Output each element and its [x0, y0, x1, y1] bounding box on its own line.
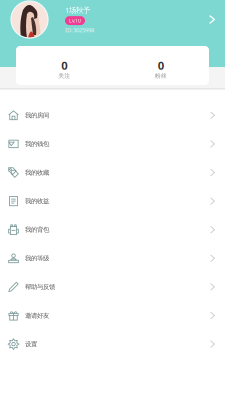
staticText: 0	[158, 58, 164, 73]
staticText: 我的收益	[25, 197, 49, 205]
staticText: 我的收藏	[25, 168, 49, 177]
staticText: ID:3025998	[65, 26, 94, 34]
button[interactable]: 我的收藏	[0, 158, 225, 187]
staticText: 0	[61, 58, 67, 73]
button[interactable]: 我的钱包	[0, 130, 225, 158]
button[interactable]: 0	[112, 46, 209, 85]
staticText: Lv.10	[69, 17, 81, 24]
staticText: 我的房间	[25, 111, 49, 119]
button[interactable]: 我的房间	[0, 101, 225, 130]
button[interactable]: 我的背包	[0, 215, 225, 244]
button[interactable]: 我的等级	[0, 244, 225, 273]
staticText: 邀请好友	[25, 311, 49, 320]
button[interactable]: 0	[16, 46, 112, 85]
staticText: 关注	[58, 72, 70, 79]
staticText: 我的等级	[25, 254, 49, 262]
staticText: 帮助与反馈	[25, 283, 55, 291]
staticText: 我的背包	[25, 226, 49, 234]
staticText: 粉丝	[155, 72, 167, 79]
staticText: 1场秋予	[65, 5, 90, 15]
button[interactable]: Edit profile	[201, 7, 223, 32]
staticText: 设置	[25, 340, 37, 348]
button[interactable]: 帮助与反馈	[0, 273, 225, 301]
button[interactable]: 邀请好友	[0, 301, 225, 330]
button[interactable]: 我的收益	[0, 187, 225, 215]
staticText: 我的钱包	[25, 140, 49, 148]
button[interactable]: 设置	[0, 330, 225, 358]
